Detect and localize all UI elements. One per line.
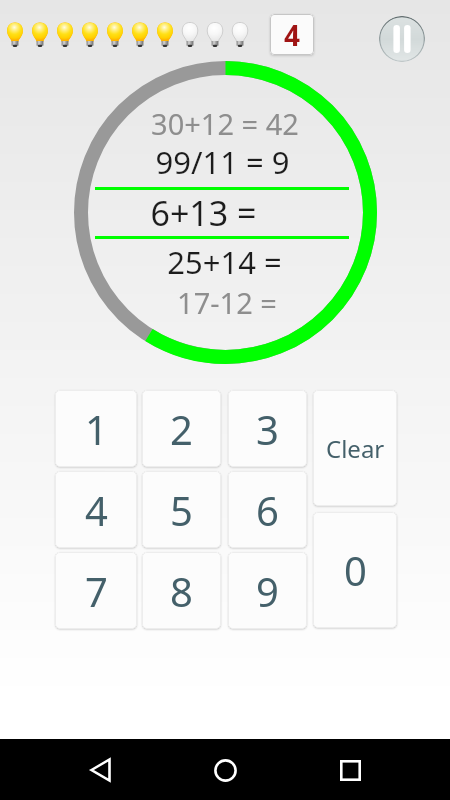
button[interactable]: 99/11 = 9 [0, 136, 447, 188]
button[interactable]: 17-12 = [2, 276, 450, 328]
button[interactable]: 4 [270, 14, 314, 55]
button[interactable]: Recent apps [326, 746, 374, 794]
button[interactable]: 2 [142, 390, 221, 467]
button[interactable]: 9 [228, 552, 307, 629]
staticText: 4 [85, 483, 108, 537]
button[interactable]: 7 [55, 552, 137, 629]
staticText: 8 [170, 564, 193, 618]
button[interactable]: Life lost [204, 20, 226, 49]
staticText: 30+12 = 42 [151, 104, 299, 143]
button[interactable]: Life lost [179, 20, 201, 49]
button[interactable]: Clear [313, 390, 397, 506]
staticText: 3 [256, 402, 279, 456]
button[interactable]: 5 [142, 471, 221, 548]
staticText: 4 [284, 16, 301, 54]
button[interactable]: Life remaining [54, 20, 76, 49]
button[interactable]: 4 [55, 471, 137, 548]
button[interactable]: Back [76, 746, 124, 794]
button[interactable]: 3 [228, 390, 307, 467]
staticText: 6 [256, 483, 279, 537]
button[interactable]: Life remaining [79, 20, 101, 49]
staticText: 1 [85, 402, 108, 456]
button[interactable]: Life remaining [4, 20, 26, 49]
button[interactable]: 1 [55, 390, 137, 467]
button[interactable]: Home [201, 746, 249, 794]
button[interactable]: Life lost [229, 20, 251, 49]
staticText: 25+14 = [167, 241, 282, 283]
button[interactable]: 30+12 = 42 [0, 97, 450, 149]
button[interactable]: Life remaining [29, 20, 51, 49]
button[interactable]: Life remaining [104, 20, 126, 49]
button[interactable]: Life remaining [129, 20, 151, 49]
staticText: Clear [326, 432, 385, 465]
button[interactable]: Life remaining [154, 20, 176, 49]
button[interactable]: 25+14 = [0, 236, 449, 288]
staticText: 2 [170, 402, 193, 456]
staticText: 5 [170, 483, 193, 537]
staticText: 7 [85, 564, 108, 618]
button[interactable]: 6+13 = [0, 187, 428, 239]
staticText: 6+13 = [150, 190, 257, 236]
button[interactable]: Pause [379, 16, 425, 62]
staticText: 17-12 = [177, 283, 277, 322]
button[interactable]: 0 [313, 512, 397, 628]
staticText: 0 [344, 543, 367, 597]
staticText: 9 [256, 564, 279, 618]
button[interactable]: 6 [228, 471, 307, 548]
staticText: 99/11 = 9 [155, 141, 290, 183]
button[interactable]: 8 [142, 552, 221, 629]
